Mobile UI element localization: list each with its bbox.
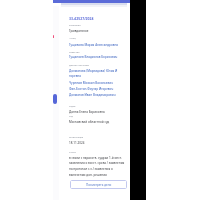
button[interactable]: Гущапиев Владислав Борисович [69, 55, 118, 59]
staticText: Другие участники [69, 64, 89, 67]
button[interactable]: Долматов Иван Владимирович [69, 93, 116, 97]
staticText: Московский областной суд [69, 120, 110, 124]
button[interactable]: 33-42527/2024 [69, 16, 94, 21]
staticText: Долматова (Маркидова) Юлия И [69, 69, 118, 73]
button[interactable]: Посмотреть дело [70, 180, 127, 189]
staticText: Посмотреть дело [86, 183, 112, 187]
staticText: Суд [69, 115, 73, 118]
other: Marker [53, 35, 54, 38]
staticText: Данна Елена Борисовна [69, 110, 105, 114]
staticText: Судья [69, 105, 76, 108]
staticText: Гражданское [69, 29, 89, 33]
staticText: горевна [69, 74, 81, 78]
staticText: 18.11.2024 [69, 141, 85, 145]
button[interactable]: Долматова (Маркидова) Юлия И [69, 69, 118, 78]
staticText: Категория [69, 24, 81, 27]
staticText: Истец [69, 37, 76, 40]
button[interactable]: Гущикова Мария Александровна [69, 43, 119, 47]
button[interactable]: Фан-Бостон-Фоутар Игоревич [69, 87, 114, 91]
button[interactable]: Чурюков Михаил Васильевич [69, 81, 113, 85]
staticText: Регистрация [69, 136, 84, 139]
staticText: Ответчик [69, 51, 80, 54]
staticText: Статус [69, 151, 77, 154]
staticText: в связи с нарасотк. судрьи 1-й инст. зая… [69, 156, 127, 177]
